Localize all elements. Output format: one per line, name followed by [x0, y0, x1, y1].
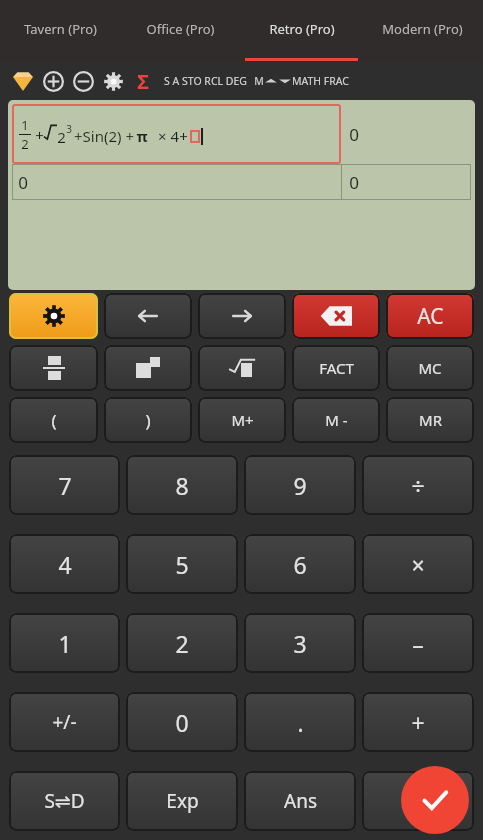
staticText: 3: [66, 122, 72, 136]
staticText: ): [145, 409, 151, 432]
button[interactable]: Office (Pro): [120, 0, 241, 62]
staticText: FACT: [319, 358, 354, 378]
button[interactable]: 2: [126, 613, 238, 673]
staticText: –: [412, 628, 424, 659]
staticText: 7: [58, 470, 72, 501]
staticText: MR: [419, 410, 442, 430]
button[interactable]: Add: [38, 66, 68, 96]
button[interactable]: 8: [126, 455, 238, 515]
button[interactable]: MC: [386, 345, 474, 391]
staticText: ×: [411, 549, 425, 580]
staticText: M -: [325, 410, 348, 430]
staticText: .: [297, 707, 304, 738]
button[interactable]: 1: [12, 104, 341, 164]
staticText: 4: [58, 549, 72, 580]
staticText: 2: [57, 127, 66, 147]
staticText: Retro (Pro): [269, 20, 335, 38]
button[interactable]: Equals: [401, 766, 469, 834]
button[interactable]: M -: [292, 397, 380, 443]
button[interactable]: –: [362, 613, 474, 673]
button[interactable]: +/-: [9, 692, 120, 752]
button[interactable]: +: [362, 692, 474, 752]
staticText: 0: [349, 123, 359, 146]
staticText: 1: [21, 116, 29, 134]
button[interactable]: ): [104, 397, 192, 443]
staticText: +: [411, 707, 425, 738]
button[interactable]: Retro (Pro): [241, 0, 362, 62]
button[interactable]: M+: [198, 397, 286, 443]
button[interactable]: Settings: [9, 293, 98, 339]
button[interactable]: 1: [9, 613, 120, 673]
button[interactable]: Settings: [98, 66, 128, 96]
button[interactable]: AC: [386, 293, 474, 339]
button[interactable]: 9: [244, 455, 356, 515]
button[interactable]: ÷: [362, 455, 474, 515]
staticText: Modern (Pro): [382, 20, 463, 38]
staticText: 0: [349, 171, 359, 194]
staticText: +Sin(2) +: [72, 126, 136, 146]
staticText: (: [51, 409, 57, 432]
button[interactable]: Exp: [126, 771, 238, 831]
button[interactable]: Square root: [198, 345, 286, 391]
button[interactable]: MR: [386, 397, 474, 443]
staticText: Office (Pro): [146, 20, 215, 38]
button[interactable]: Backspace: [292, 293, 380, 339]
staticText: 3: [293, 628, 307, 659]
staticText: × 4+: [148, 126, 190, 146]
button[interactable]: Premium: [8, 66, 38, 96]
staticText: +: [31, 125, 44, 145]
button[interactable]: 3: [244, 613, 356, 673]
button[interactable]: 6: [244, 534, 356, 594]
staticText: +/-: [52, 709, 77, 735]
button[interactable]: Ans: [244, 771, 356, 831]
staticText: Σ: [137, 68, 149, 95]
button[interactable]: 5: [126, 534, 238, 594]
button[interactable]: Remove: [68, 66, 98, 96]
button[interactable]: 7: [9, 455, 120, 515]
button[interactable]: 4: [9, 534, 120, 594]
staticText: π: [136, 126, 148, 146]
staticText: Ans: [284, 788, 317, 814]
button[interactable]: S⇌D: [9, 771, 120, 831]
button[interactable]: [362, 771, 474, 831]
staticText: 2: [175, 628, 189, 659]
button[interactable]: 0: [126, 692, 238, 752]
button[interactable]: Tavern (Pro): [0, 0, 120, 62]
staticText: M: [254, 74, 264, 88]
button[interactable]: Sum: [128, 66, 158, 96]
button[interactable]: (: [9, 397, 98, 443]
button[interactable]: 0: [18, 164, 341, 200]
staticText: Tavern (Pro): [24, 20, 97, 38]
button[interactable]: Fraction: [9, 345, 98, 391]
button[interactable]: Modern (Pro): [362, 0, 483, 62]
button[interactable]: ×: [362, 534, 474, 594]
staticText: 6: [293, 549, 307, 580]
staticText: AC: [417, 302, 444, 331]
staticText: M+: [231, 410, 254, 430]
staticText: 1: [58, 628, 72, 659]
staticText: 8: [175, 470, 189, 501]
button[interactable]: .: [244, 692, 356, 752]
staticText: 5: [175, 549, 189, 580]
staticText: 9: [293, 470, 307, 501]
button[interactable]: FACT: [292, 345, 380, 391]
staticText: MATH FRAC: [292, 74, 349, 88]
staticText: MC: [418, 358, 442, 378]
button[interactable]: Power: [104, 345, 192, 391]
staticText: ÷: [411, 470, 425, 501]
staticText: S A STO RCL DEG: [164, 74, 247, 88]
staticText: Exp: [166, 788, 199, 814]
staticText: 0: [18, 171, 28, 194]
button[interactable]: Right: [198, 293, 286, 339]
button[interactable]: Left: [104, 293, 192, 339]
staticText: 2: [21, 135, 29, 153]
staticText: S⇌D: [44, 788, 85, 814]
staticText: 0: [175, 707, 189, 738]
